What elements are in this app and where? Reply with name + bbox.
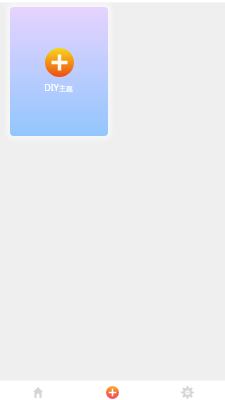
button[interactable]: Home [0,382,75,400]
button[interactable]: Add [75,382,150,400]
button[interactable]: DIY [10,7,108,136]
staticText: DIY [44,81,59,93]
staticText: 主题 [59,84,73,93]
button[interactable]: Settings [150,382,225,400]
